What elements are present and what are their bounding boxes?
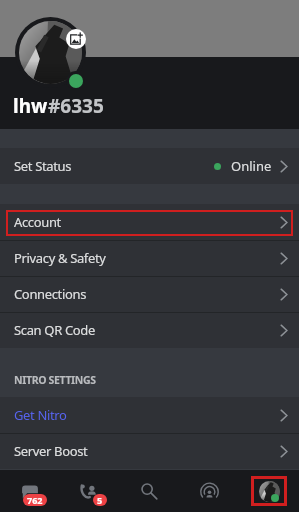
button[interactable]: Privacy & Safety — [0, 240, 299, 276]
staticText: Privacy & Safety — [14, 249, 106, 267]
staticText: NITRO SETTINGS — [14, 373, 96, 387]
staticText: #6335 — [48, 93, 104, 119]
button[interactable]: Connections — [0, 276, 299, 312]
staticText: Connections — [14, 285, 87, 303]
staticText: Server Boost — [14, 442, 88, 460]
button[interactable]: Get Nitro — [0, 397, 299, 433]
staticText: Account — [14, 213, 61, 231]
staticText: Scan QR Code — [14, 321, 95, 339]
button[interactable]: Friends — [59, 470, 119, 512]
button[interactable]: Search — [119, 470, 179, 512]
staticText: Get Nitro — [14, 406, 67, 424]
button[interactable]: Mentions — [179, 470, 239, 512]
staticText: Online — [231, 157, 272, 175]
button[interactable]: You — [239, 470, 299, 512]
staticText: 762 — [27, 494, 43, 506]
staticText: lhw — [13, 93, 48, 119]
button[interactable]: Profile avatar — [19, 21, 82, 84]
button[interactable]: Messages — [0, 470, 59, 512]
button[interactable]: Server Boost — [0, 433, 299, 469]
button[interactable]: Account — [0, 204, 299, 240]
button[interactable]: Set Status — [0, 148, 299, 184]
staticText: Set Status — [14, 157, 72, 175]
button[interactable]: Change avatar — [66, 29, 86, 49]
staticText: 5 — [97, 494, 103, 506]
button[interactable]: Scan QR Code — [0, 312, 299, 348]
